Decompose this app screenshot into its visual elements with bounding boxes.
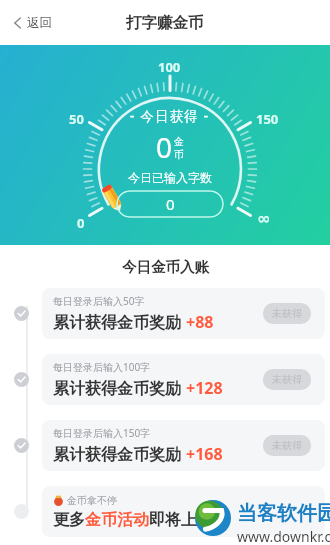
staticText: 0: [77, 214, 85, 232]
staticText: 未获得: [272, 373, 302, 386]
staticText: 0: [156, 128, 173, 166]
staticText: 当客软件园: [237, 501, 330, 526]
button[interactable]: 未获得: [263, 369, 311, 390]
staticText: +88: [186, 311, 214, 333]
staticText: 每日登录后输入100字: [53, 360, 151, 374]
staticText: - 今日获得 -: [130, 107, 210, 125]
staticText: 更多: [53, 510, 85, 530]
staticText: 金币拿不停: [67, 494, 117, 507]
staticText: ∞: [257, 209, 271, 228]
staticText: 未获得: [272, 307, 302, 320]
staticText: 每日登录后输入50字: [53, 294, 145, 308]
button[interactable]: 金币拿不停: [42, 486, 325, 537]
staticText: 币: [174, 148, 184, 161]
staticText: 每日登录后输入150字: [53, 426, 151, 440]
staticText: 返回: [27, 15, 52, 31]
staticText: +128: [186, 377, 223, 399]
staticText: 150: [256, 110, 279, 128]
staticText: 100: [158, 58, 181, 76]
staticText: 即将上线: [149, 510, 213, 530]
staticText: 累计获得金币奖励: [53, 377, 186, 399]
button[interactable]: 0: [116, 190, 224, 218]
button[interactable]: 每日登录后输入100字: [42, 354, 325, 405]
staticText: 金币活动: [85, 510, 149, 530]
button[interactable]: 每日登录后输入150字: [42, 420, 325, 471]
staticText: www.downkr.com: [237, 527, 330, 545]
staticText: 累计获得金币奖励: [53, 311, 186, 333]
staticText: 50: [69, 110, 84, 128]
staticText: 0: [166, 194, 175, 214]
staticText: 今日已输入字数: [128, 170, 212, 185]
button[interactable]: 未获得: [263, 435, 311, 456]
staticText: 今日金币入账: [122, 258, 209, 276]
staticText: 未获得: [272, 439, 302, 452]
button[interactable]: 每日登录后输入50字: [42, 288, 325, 339]
staticText: 累计获得金币奖励: [53, 443, 186, 465]
button[interactable]: 未获得: [263, 303, 311, 324]
staticText: +168: [186, 443, 223, 465]
button[interactable]: 返回: [8, 7, 58, 39]
staticText: 金: [174, 135, 184, 148]
staticText: 打字赚金币: [126, 13, 204, 33]
